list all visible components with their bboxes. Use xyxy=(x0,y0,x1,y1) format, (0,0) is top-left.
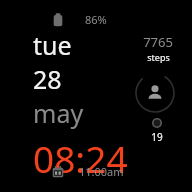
button[interactable]: Battery 86 percent xyxy=(50,11,109,28)
button[interactable]: Next event 19 xyxy=(140,118,174,144)
staticText: may xyxy=(33,96,84,130)
button[interactable]: Contacts xyxy=(134,72,176,114)
staticText: 86% xyxy=(85,12,107,27)
staticText: tue xyxy=(33,28,72,62)
staticText: 08:24 xyxy=(33,133,128,183)
staticText: 11:00am xyxy=(79,164,124,179)
button[interactable]: Calendar event 11:00am xyxy=(50,163,126,180)
staticText: 19 xyxy=(151,130,163,144)
staticText: 28 xyxy=(33,62,62,96)
staticText: 7765 xyxy=(143,33,173,51)
button[interactable]: 7765 xyxy=(136,33,180,63)
staticText: steps xyxy=(147,51,170,63)
